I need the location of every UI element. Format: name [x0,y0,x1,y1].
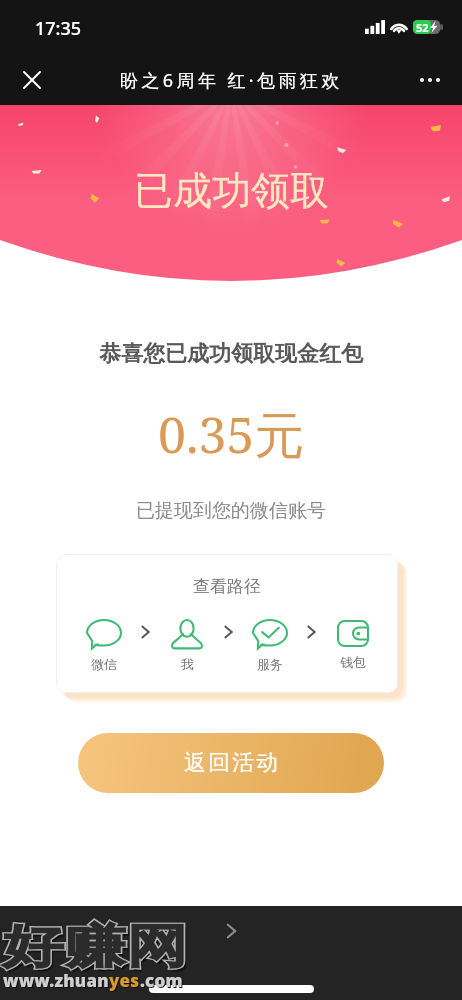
staticText: 服务 [257,656,283,672]
staticText: www.zhuan [3,969,109,992]
staticText: 已提现到您的微信账号 [136,499,326,523]
staticText: 好赚网 [2,918,188,976]
button[interactable]: 我 [162,620,212,672]
staticText: 52 [416,20,429,34]
staticText: 微信 [91,656,117,672]
staticText: 返回活动 [183,749,279,777]
button[interactable]: 钱包 [328,620,378,670]
button[interactable]: 服务 [245,620,295,672]
button[interactable]: Close [12,60,52,100]
staticText: .com [141,970,184,993]
staticText: yes [109,969,140,992]
staticText: 已成功领取 [134,166,329,215]
staticText: yes [110,970,141,993]
staticText: 好赚网 [5,921,191,979]
staticText: 好赚网 [2,918,188,976]
button[interactable]: 微信 [79,620,129,672]
button[interactable]: 返回活动 [78,733,384,793]
staticText: 我 [181,656,194,672]
staticText: 17:35 [35,16,82,41]
staticText: 0.35元 [158,400,305,468]
staticText: 盼之6周年 红·包雨狂欢 [120,68,343,93]
staticText: .com [140,969,183,992]
staticText: 恭喜您已成功领取现金红包 [99,340,363,368]
button[interactable]: Forward [218,918,244,944]
staticText: 钱包 [340,654,366,670]
staticText: 查看路径 [193,576,261,597]
button[interactable]: More options [410,60,450,100]
staticText: www.zhuan [4,970,110,993]
